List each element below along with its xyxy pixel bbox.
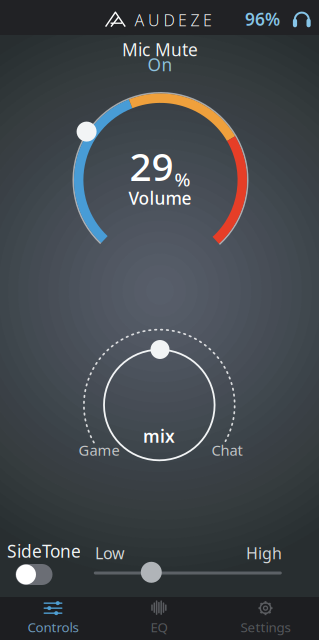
staticText: Volume [128,186,191,209]
button[interactable]: Headphones [0,0,319,35]
staticText: 29 [129,140,173,192]
button[interactable]: Mic Mute [80,36,240,78]
staticText: % [174,167,190,192]
button[interactable]: Game chat mix [150,340,169,359]
staticText: Mic Mute [122,38,198,61]
button[interactable]: SideTone [15,564,52,585]
staticText: Chat [211,440,242,460]
staticText: AUDEZE [134,9,219,31]
staticText: EQ [150,618,167,636]
button[interactable]: Volume [77,122,97,142]
staticText: 96% [245,7,280,30]
staticText: SideTone [7,539,81,562]
staticText: On [147,53,172,76]
button[interactable]: Settings [212,597,319,640]
button[interactable]: SideTone level [141,562,162,583]
staticText: High [246,542,282,564]
staticText: Game [78,440,119,460]
button[interactable]: Controls [0,597,106,640]
button[interactable]: EQ [106,597,212,640]
staticText: mix [143,424,175,447]
staticText: Low [95,542,125,564]
staticText: Settings [240,618,290,636]
staticText: Controls [27,618,78,636]
